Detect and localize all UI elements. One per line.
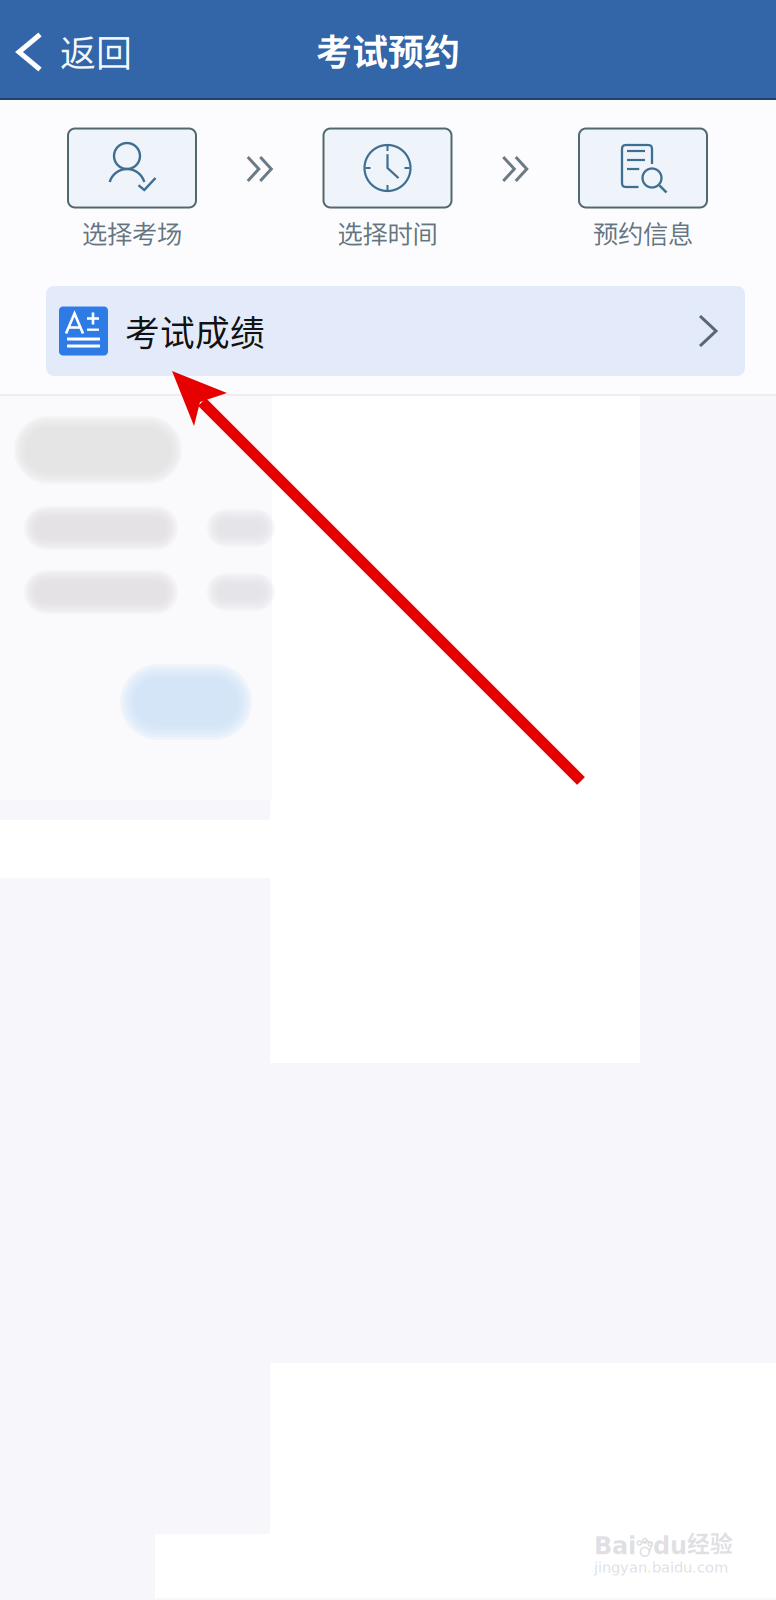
staticText: Bai bbox=[594, 1532, 636, 1560]
button[interactable]: 考试成绩 bbox=[46, 286, 745, 376]
staticText: 返回 bbox=[60, 25, 132, 77]
staticText: 考试预约 bbox=[316, 24, 460, 76]
button[interactable]: 选择时间 bbox=[323, 128, 451, 257]
staticText: 经验 bbox=[687, 1526, 733, 1559]
staticText: 预约信息 bbox=[593, 214, 693, 251]
button[interactable]: 选择考场 bbox=[68, 128, 196, 257]
staticText: du bbox=[653, 1532, 687, 1560]
staticText: 考试成绩 bbox=[125, 306, 265, 356]
button[interactable]: 预约信息 bbox=[579, 128, 707, 257]
staticText: 选择考场 bbox=[82, 214, 182, 251]
button[interactable]: 返回 bbox=[0, 0, 150, 98]
staticText: jingyan.baidu.com bbox=[594, 1559, 728, 1576]
staticText: 选择时间 bbox=[337, 214, 437, 251]
